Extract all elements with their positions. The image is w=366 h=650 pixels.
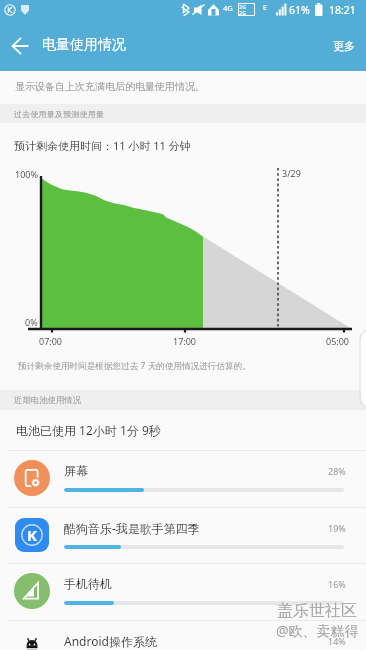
staticText: 2G bbox=[239, 3, 247, 10]
staticText: 3/29 bbox=[282, 167, 301, 179]
staticText: 61% bbox=[289, 3, 310, 17]
staticText: 2G bbox=[239, 9, 247, 16]
staticText: 100% bbox=[15, 168, 38, 180]
staticText: 预计剩余使用时间是根据您过去 7 天的使用情况进行估算的。 bbox=[18, 360, 251, 372]
button[interactable]: K bbox=[0, 507, 366, 564]
staticText: 05:00 bbox=[326, 335, 350, 347]
staticText: 屏幕 bbox=[64, 463, 88, 478]
staticText: 28% bbox=[328, 465, 346, 477]
staticText: 电池已使用 12小时 1分 9秒 bbox=[16, 422, 161, 438]
staticText: K bbox=[27, 525, 37, 545]
staticText: 0% bbox=[25, 316, 38, 328]
staticText: 18:21 bbox=[329, 3, 356, 17]
button[interactable]: 手机待机 bbox=[0, 563, 366, 620]
button[interactable]: 屏幕 bbox=[0, 450, 366, 507]
staticText: 盖乐世社区 bbox=[277, 601, 357, 621]
staticText: 电量使用情况 bbox=[42, 36, 126, 54]
button[interactable]: Android操作系统 bbox=[0, 620, 366, 650]
staticText: 17:00 bbox=[173, 335, 197, 347]
staticText: 14% bbox=[328, 635, 346, 647]
staticText: 过去使用量及预测使用量 bbox=[14, 109, 105, 119]
staticText: @欧、卖糕得 bbox=[276, 621, 359, 640]
staticText: 07:00 bbox=[39, 335, 63, 347]
button[interactable]: 返回 bbox=[6, 32, 34, 60]
button[interactable]: 更多 bbox=[322, 32, 366, 60]
staticText: 显示设备自上次充满电后的电量使用情况。 bbox=[15, 80, 205, 93]
staticText: 手机待机 bbox=[64, 576, 112, 591]
staticText: 更多 bbox=[333, 39, 355, 53]
staticText: 16% bbox=[328, 578, 346, 590]
staticText: 近期电池使用情况 bbox=[14, 395, 82, 406]
staticText: 4G bbox=[223, 3, 233, 13]
staticText: Android操作系统 bbox=[64, 633, 157, 649]
staticText: 19% bbox=[328, 522, 346, 534]
staticText: 酷狗音乐-我是歌手第四季 bbox=[64, 520, 200, 536]
staticText: 预计剩余使用时间：11 小时 11 分钟 bbox=[14, 138, 191, 153]
staticText: E bbox=[263, 3, 267, 13]
